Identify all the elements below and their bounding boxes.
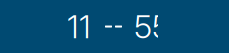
staticText: 11 — [67, 7, 91, 46]
staticText: 55 — [134, 7, 170, 46]
